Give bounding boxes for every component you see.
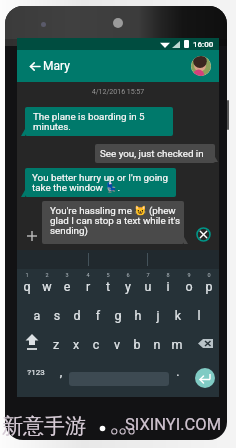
staticText: p <box>199 279 219 294</box>
staticText: s <box>47 308 67 323</box>
staticText: , <box>51 364 71 379</box>
staticText: 5 <box>98 272 118 278</box>
staticText: See you, just checked in <box>100 148 204 159</box>
staticText: 4/12/2016 15:57 <box>17 88 219 96</box>
button[interactable]: j <box>148 300 168 329</box>
button[interactable] <box>95 144 215 163</box>
button[interactable]: 6 <box>118 271 138 300</box>
button[interactable]: m <box>167 329 187 358</box>
button[interactable]: Shift <box>21 329 43 358</box>
button[interactable] <box>25 168 176 197</box>
staticText: ?123 <box>21 368 51 377</box>
staticText: j <box>148 308 168 323</box>
staticText: y <box>118 279 138 294</box>
button[interactable]: 1 <box>17 271 37 300</box>
button[interactable]: n <box>147 329 167 358</box>
button[interactable]: 7 <box>138 271 158 300</box>
staticText: r <box>78 279 98 294</box>
staticText: f <box>88 308 108 323</box>
staticText: 16:00 <box>193 40 214 49</box>
staticText: 8 <box>158 272 178 278</box>
button[interactable]: Cancel sending <box>196 227 211 242</box>
button[interactable]: b <box>127 329 147 358</box>
staticText: SIXINYI.COM <box>125 415 222 434</box>
button[interactable]: g <box>108 300 128 329</box>
staticText: h <box>128 308 148 323</box>
button[interactable]: 3 <box>57 271 77 300</box>
button[interactable] <box>42 201 184 244</box>
button[interactable]: Backspace <box>195 329 217 358</box>
staticText: b <box>127 337 147 352</box>
button[interactable] <box>25 107 173 136</box>
staticText: The plane is boarding in 5 minutes. <box>33 111 145 133</box>
staticText: You better hurry up or I'm going take th… <box>32 172 168 194</box>
staticText: 3 <box>57 272 77 278</box>
staticText: 2 <box>37 272 57 278</box>
button[interactable]: 2 <box>37 271 57 300</box>
button[interactable]: v <box>107 329 127 358</box>
staticText: 新意手游 <box>2 413 86 439</box>
button[interactable]: c <box>86 329 106 358</box>
staticText: e <box>57 279 77 294</box>
button[interactable]: ?123 <box>21 358 51 387</box>
button[interactable]: . <box>169 358 187 387</box>
staticText: o <box>179 279 199 294</box>
staticText: w <box>37 279 57 294</box>
staticText: Mary <box>43 59 70 73</box>
button[interactable]: d <box>67 300 87 329</box>
staticText: 4 <box>78 272 98 278</box>
staticText: n <box>147 337 167 352</box>
button[interactable]: , <box>51 358 71 387</box>
staticText: g <box>108 308 128 323</box>
staticText: m <box>167 337 187 352</box>
button[interactable]: 5 <box>98 271 118 300</box>
staticText: a <box>27 308 47 323</box>
staticText: v <box>107 337 127 352</box>
button[interactable]: Attach <box>22 226 42 246</box>
staticText: 1 <box>17 272 37 278</box>
button[interactable]: Send <box>195 368 215 388</box>
staticText: . <box>169 364 187 379</box>
button[interactable]: Contact photo <box>191 56 211 76</box>
button[interactable]: 9 <box>179 271 199 300</box>
staticText: You're hassling me 😺 (phew glad I can st… <box>50 205 181 237</box>
button[interactable]: l <box>189 300 209 329</box>
button[interactable]: x <box>66 329 86 358</box>
staticText: q <box>17 279 37 294</box>
button[interactable]: 8 <box>158 271 178 300</box>
staticText: 0 <box>199 272 219 278</box>
button[interactable]: Back <box>25 56 45 76</box>
staticText: z <box>46 337 66 352</box>
button[interactable]: a <box>27 300 47 329</box>
staticText: 6 <box>118 272 138 278</box>
staticText: t <box>98 279 118 294</box>
button[interactable]: 4 <box>78 271 98 300</box>
staticText: k <box>168 308 188 323</box>
staticText: 7 <box>138 272 158 278</box>
button[interactable]: f <box>88 300 108 329</box>
button[interactable]: z <box>46 329 66 358</box>
staticText: i <box>158 279 178 294</box>
staticText: c <box>86 337 106 352</box>
staticText: u <box>138 279 158 294</box>
button[interactable]: k <box>168 300 188 329</box>
button[interactable]: h <box>128 300 148 329</box>
staticText: d <box>67 308 87 323</box>
staticText: l <box>189 308 209 323</box>
button[interactable]: 0 <box>199 271 219 300</box>
staticText: x <box>66 337 86 352</box>
button[interactable]: s <box>47 300 67 329</box>
staticText: 9 <box>179 272 199 278</box>
